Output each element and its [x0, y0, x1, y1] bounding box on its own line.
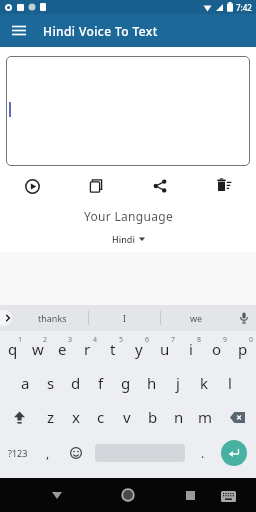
staticText: I	[123, 312, 127, 324]
button[interactable]: h	[139, 368, 165, 398]
button[interactable]: x	[63, 402, 88, 432]
staticText: r	[84, 339, 91, 359]
staticText: j	[176, 373, 180, 393]
staticText: b	[148, 407, 158, 427]
staticText: q	[8, 339, 18, 359]
button[interactable]	[218, 438, 250, 468]
button[interactable]: u	[152, 334, 178, 364]
staticText: 7:42	[236, 2, 252, 13]
button[interactable]: f	[88, 368, 113, 398]
staticText: k	[200, 373, 209, 393]
button[interactable]	[128, 177, 192, 195]
staticText: v	[123, 407, 131, 427]
staticText: t	[110, 339, 116, 359]
staticText: 1	[18, 335, 23, 345]
button[interactable]	[0, 402, 38, 432]
button[interactable]	[46, 484, 68, 506]
staticText: thanks	[38, 312, 67, 324]
button[interactable]: o	[204, 334, 230, 364]
staticText: 8	[197, 335, 202, 345]
staticText: 2	[43, 335, 48, 345]
staticText: s	[47, 373, 55, 393]
button[interactable]: m	[192, 402, 218, 432]
staticText: y	[135, 339, 143, 359]
button[interactable]: z	[38, 402, 63, 432]
button[interactable]: Hindi	[0, 233, 256, 245]
button[interactable]: j	[165, 368, 191, 398]
staticText: 7	[171, 335, 176, 345]
staticText: i	[189, 339, 193, 359]
button[interactable]	[117, 484, 139, 506]
button[interactable]	[64, 177, 128, 195]
staticText: 3	[68, 335, 73, 345]
staticText: we	[190, 312, 203, 324]
staticText: a	[21, 373, 30, 393]
button[interactable]: e	[50, 334, 75, 364]
button[interactable]: ?123	[0, 438, 36, 468]
staticText: c	[97, 407, 105, 427]
staticText: m	[198, 407, 213, 427]
button[interactable]: q	[0, 334, 25, 364]
staticText: l	[228, 373, 232, 393]
button[interactable]: c	[88, 402, 114, 432]
button[interactable]	[179, 484, 201, 506]
staticText: o	[212, 339, 222, 359]
button[interactable]	[60, 438, 92, 468]
button[interactable]: y	[126, 334, 152, 364]
button[interactable]: thanks	[16, 305, 88, 331]
button[interactable]: I	[89, 305, 160, 331]
staticText: 6	[145, 335, 150, 345]
button[interactable]: i	[178, 334, 204, 364]
staticText: g	[121, 373, 131, 393]
button[interactable]: t	[100, 334, 126, 364]
staticText: x	[72, 407, 80, 427]
button[interactable]: v	[114, 402, 140, 432]
staticText: e	[58, 339, 67, 359]
staticText: 0	[249, 335, 254, 345]
staticText: ?123	[8, 447, 28, 459]
staticText: u	[160, 339, 170, 359]
button[interactable]	[12, 24, 26, 38]
button[interactable]: b	[140, 402, 166, 432]
button[interactable]: we	[161, 305, 232, 331]
button[interactable]	[192, 177, 256, 195]
button[interactable]: g	[113, 368, 139, 398]
staticText: d	[71, 373, 81, 393]
button[interactable]: w	[25, 334, 50, 364]
button[interactable]: a	[13, 368, 38, 398]
staticText: f	[98, 373, 104, 393]
button[interactable]: ,	[36, 438, 60, 468]
staticText: w	[32, 339, 44, 359]
button[interactable]: r	[75, 334, 100, 364]
button[interactable]: .	[188, 438, 218, 468]
staticText: n	[174, 407, 184, 427]
button[interactable]	[232, 305, 256, 331]
staticText: p	[238, 339, 248, 359]
button[interactable]	[218, 402, 256, 432]
staticText: z	[47, 407, 55, 427]
staticText: Hindi	[112, 233, 135, 245]
button[interactable]	[216, 484, 240, 508]
staticText: ,	[46, 445, 50, 461]
button[interactable]	[0, 305, 16, 331]
button[interactable]: p	[230, 334, 256, 364]
staticText: Hindi Voice To Text	[43, 23, 158, 39]
button[interactable]: d	[63, 368, 88, 398]
button[interactable]: k	[191, 368, 217, 398]
staticText: 9	[223, 335, 228, 345]
staticText: Your Language	[84, 208, 173, 224]
staticText: .	[201, 445, 205, 461]
button[interactable]: n	[166, 402, 192, 432]
staticText: 4	[93, 335, 98, 345]
button[interactable]	[221, 440, 247, 466]
button[interactable]: l	[217, 368, 243, 398]
button[interactable]	[0, 177, 64, 195]
button[interactable]: s	[38, 368, 63, 398]
staticText: h	[147, 373, 157, 393]
staticText: 5	[119, 335, 124, 345]
